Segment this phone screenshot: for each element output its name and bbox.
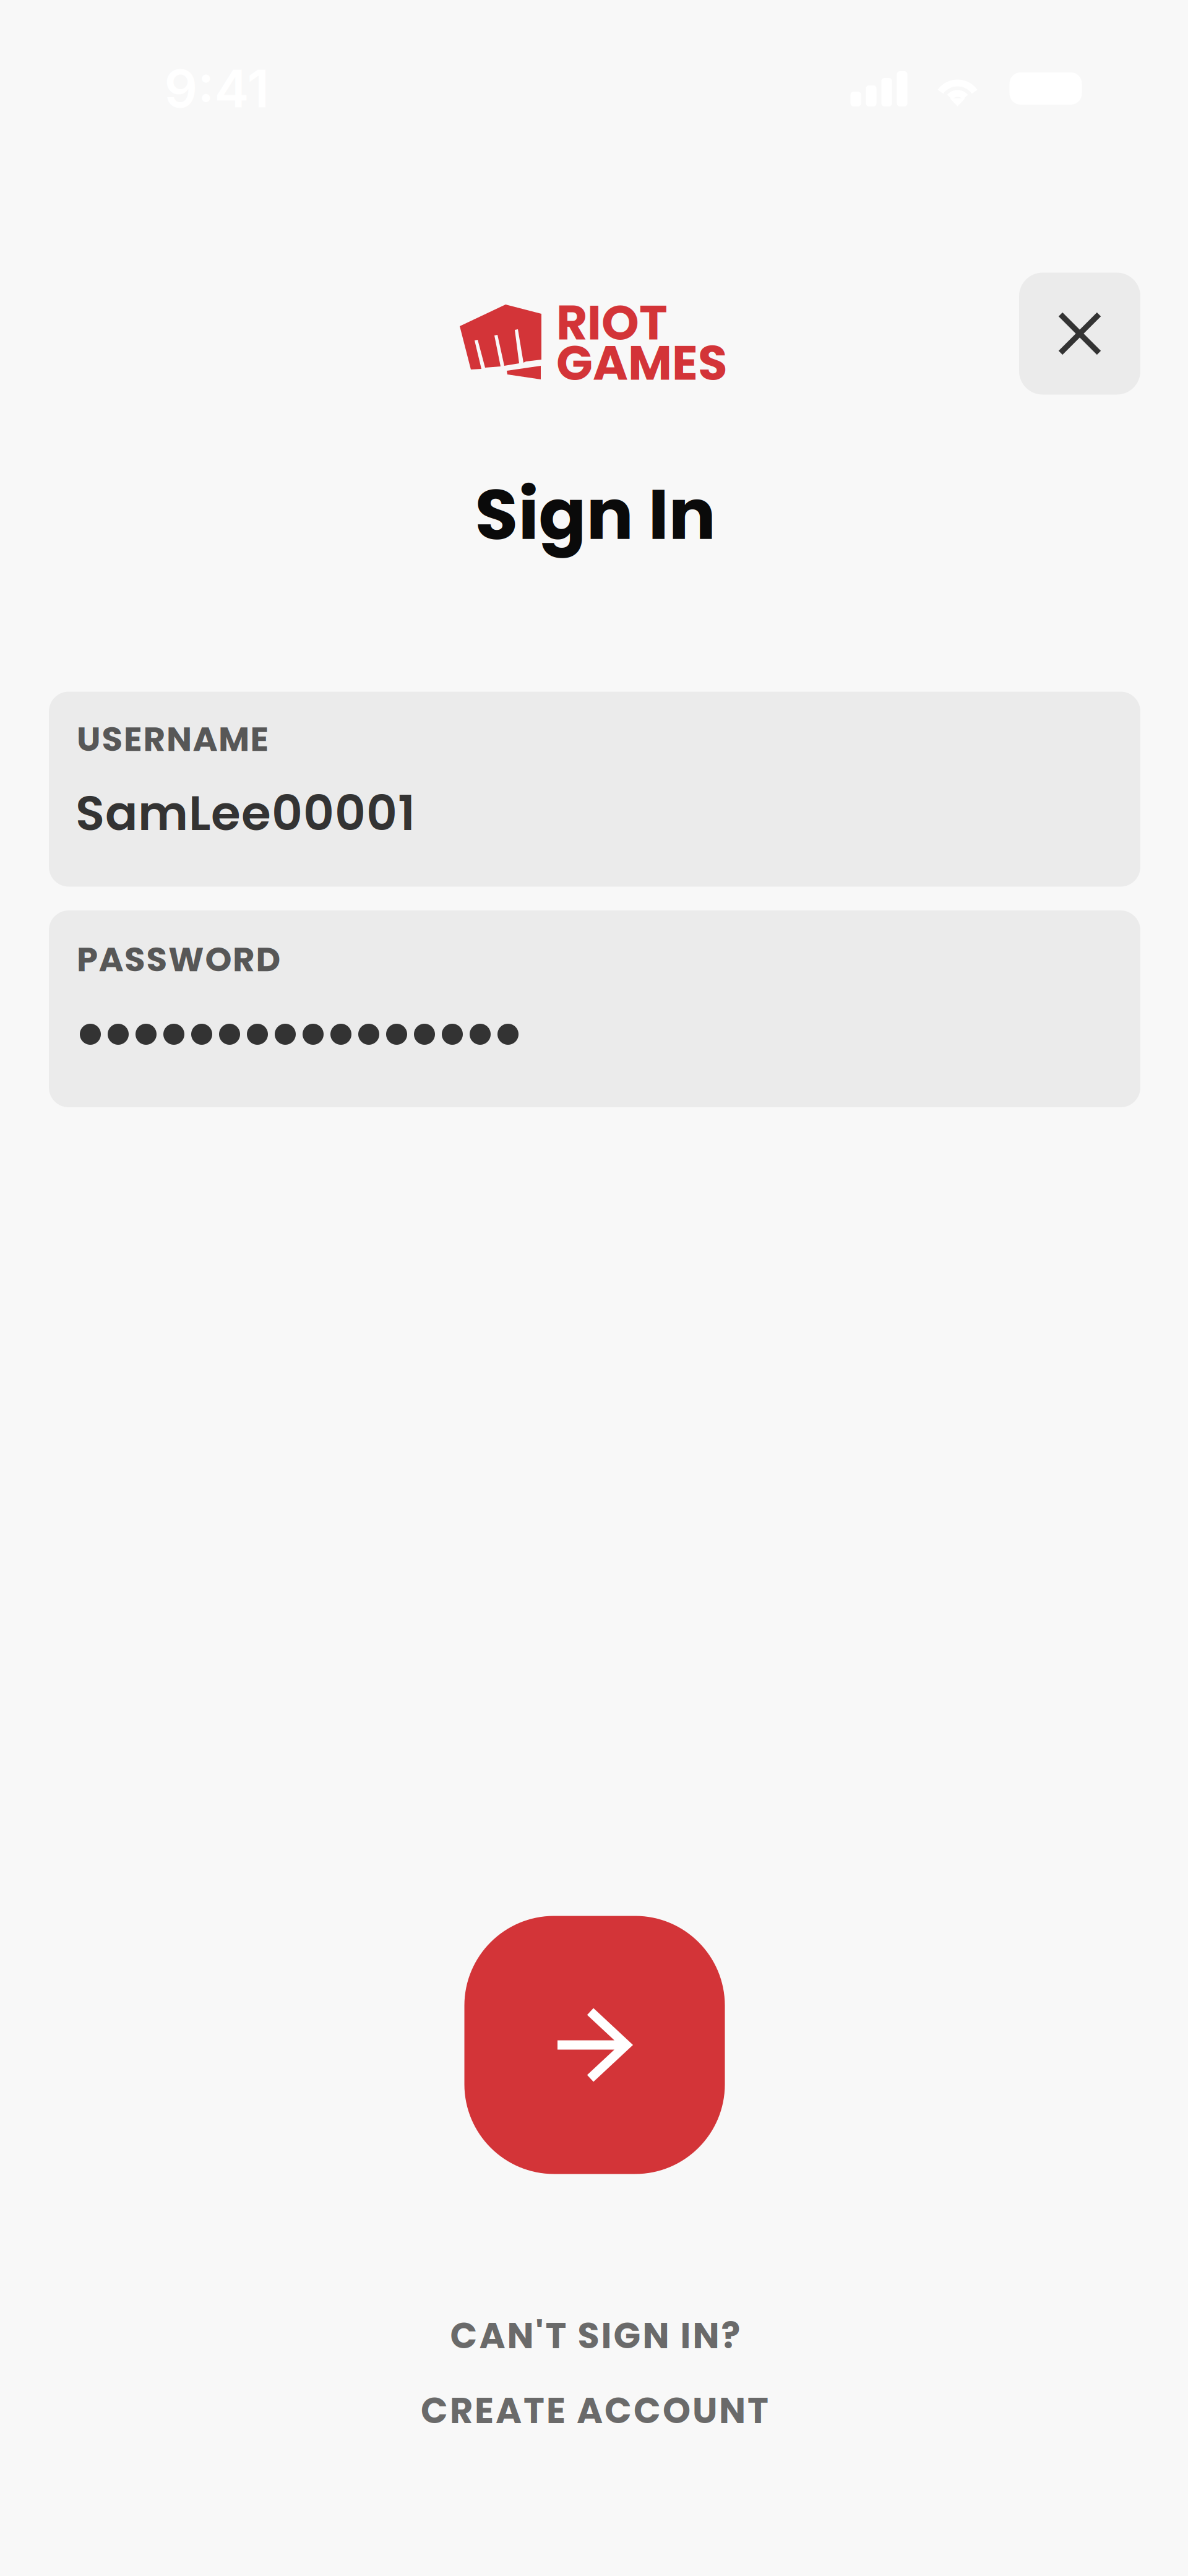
staticText: USERNAME <box>77 715 269 763</box>
staticText: CREATE ACCOUNT <box>421 2386 768 2436</box>
button[interactable]: Close <box>1019 273 1140 395</box>
staticText: Sign In <box>475 465 716 563</box>
button[interactable]: CAN'T SIGN IN? <box>450 2311 740 2361</box>
staticText: SamLee00001 <box>75 780 415 847</box>
button[interactable]: Sign in <box>464 1916 725 2174</box>
staticText: RIOT <box>556 289 668 356</box>
button[interactable]: CREATE ACCOUNT <box>421 2386 768 2436</box>
staticText: CAN'T SIGN IN? <box>450 2311 740 2361</box>
staticText: PASSWORD <box>77 936 281 983</box>
staticText: GAMES <box>556 330 728 397</box>
